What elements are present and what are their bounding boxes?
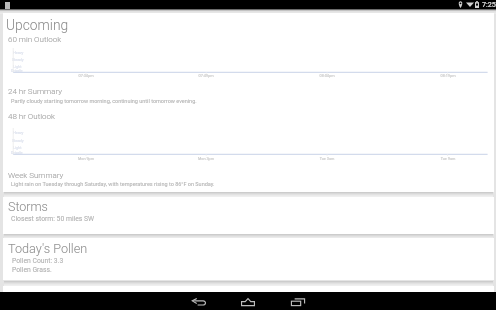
- staticText: Heavy: [13, 130, 24, 134]
- staticText: Steady: [12, 138, 24, 142]
- button[interactable]: Upcoming: [3, 13, 494, 192]
- staticText: 08:19pm: [433, 73, 463, 77]
- staticText: Drizzle: [11, 68, 23, 72]
- staticText: Light: [13, 64, 22, 68]
- staticText: Tue 3am: [312, 156, 342, 160]
- button[interactable]: Home: [227, 292, 269, 310]
- staticText: 7:25: [482, 0, 496, 8]
- staticText: Light: [13, 145, 22, 149]
- staticText: Drizzle: [11, 150, 23, 154]
- button[interactable]: Back: [178, 292, 220, 310]
- staticText: Mon 3pm: [191, 156, 221, 160]
- staticText: Light rain on Tuesday through Saturday, …: [11, 181, 215, 187]
- button[interactable]: [3, 286, 494, 293]
- button[interactable]: Storms: [3, 197, 494, 234]
- staticText: Today's Pollen: [8, 241, 88, 256]
- staticText: Storms: [8, 199, 48, 214]
- staticText: Closest storm: 50 miles SW: [11, 215, 95, 223]
- button[interactable]: Recents: [277, 292, 319, 310]
- staticText: 07:49pm: [191, 73, 221, 77]
- button[interactable]: Today's Pollen: [3, 238, 494, 280]
- staticText: Pollen Grass.: [12, 266, 52, 274]
- staticText: Heavy: [13, 50, 24, 54]
- staticText: Tue 9am: [433, 156, 463, 160]
- staticText: Upcoming: [6, 17, 69, 33]
- staticText: 08:04pm: [312, 73, 342, 77]
- staticText: 48 hr Outlook: [8, 112, 55, 121]
- staticText: Week Summary: [8, 171, 64, 180]
- staticText: 24 hr Summary: [8, 87, 63, 96]
- staticText: Mon 9pm: [71, 156, 101, 160]
- staticText: 60 min Outlook: [8, 35, 62, 44]
- staticText: Pollen Count: 3.3: [12, 257, 64, 265]
- staticText: Steady: [12, 57, 24, 61]
- staticText: Partly cloudy starting tomorrow morning,…: [11, 98, 197, 104]
- staticText: 07:34pm: [71, 73, 101, 77]
